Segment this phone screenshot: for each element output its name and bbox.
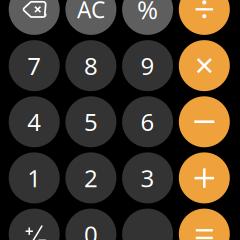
button[interactable]: 5 bbox=[65, 96, 116, 147]
button[interactable]: % bbox=[122, 0, 173, 35]
button[interactable]: Plus minus bbox=[9, 209, 60, 240]
staticText: AC bbox=[77, 0, 105, 24]
staticText: 4 bbox=[27, 106, 41, 138]
button[interactable]: 6 bbox=[122, 96, 173, 147]
button[interactable]: 9 bbox=[122, 40, 173, 91]
button[interactable]: 7 bbox=[9, 40, 60, 91]
button[interactable]: Equals bbox=[179, 209, 230, 240]
button[interactable]: 3 bbox=[122, 152, 173, 203]
staticText: 9 bbox=[141, 50, 155, 82]
button[interactable]: 1 bbox=[9, 152, 60, 203]
button[interactable]: 8 bbox=[65, 40, 116, 91]
staticText: 7 bbox=[27, 50, 41, 82]
button[interactable]: 4 bbox=[9, 96, 60, 147]
button[interactable]: Divide bbox=[179, 0, 230, 35]
staticText: 3 bbox=[141, 162, 155, 194]
button[interactable]: 0 bbox=[65, 209, 116, 240]
button[interactable]: Add bbox=[179, 152, 230, 203]
button[interactable]: . bbox=[122, 209, 173, 240]
staticText: % bbox=[137, 0, 158, 26]
staticText: 6 bbox=[141, 106, 155, 138]
button[interactable]: AC bbox=[65, 0, 116, 35]
staticText: 5 bbox=[84, 106, 98, 138]
button[interactable]: 2 bbox=[65, 152, 116, 203]
staticText: 2 bbox=[84, 162, 98, 194]
button[interactable]: Subtract bbox=[179, 96, 230, 147]
button[interactable]: Delete bbox=[9, 0, 60, 35]
staticText: 1 bbox=[27, 162, 41, 194]
staticText: 0 bbox=[84, 218, 98, 240]
button[interactable]: Multiply bbox=[179, 40, 230, 91]
staticText: 8 bbox=[84, 50, 98, 82]
